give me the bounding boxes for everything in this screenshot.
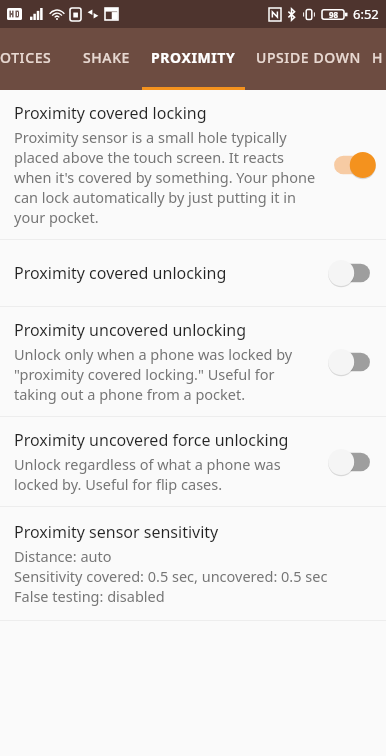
staticText: Unlock only when a phone was locked by "… bbox=[14, 344, 318, 404]
staticText: SHAKE bbox=[83, 48, 130, 67]
button[interactable]: UPSIDE DOWN bbox=[245, 28, 372, 86]
staticText: PROXIMITY bbox=[151, 48, 236, 67]
staticText: Proximity covered locking bbox=[14, 102, 207, 124]
button[interactable]: Toggle on bbox=[326, 148, 378, 182]
staticText: UPSIDE DOWN bbox=[256, 48, 361, 67]
staticText: OTICES bbox=[0, 48, 52, 67]
staticText: Proximity sensor sensitivity bbox=[14, 521, 219, 543]
staticText: Unlock regardless of what a phone was lo… bbox=[14, 454, 318, 494]
staticText: 98 bbox=[329, 9, 339, 20]
button[interactable]: Proximity covered locking bbox=[0, 90, 386, 239]
button[interactable]: SHAKE bbox=[70, 28, 142, 86]
staticText: H bbox=[372, 48, 384, 67]
button[interactable]: Proximity sensor sensitivity bbox=[0, 507, 386, 620]
button[interactable]: Toggle off bbox=[326, 256, 378, 290]
staticText: 6:52 bbox=[353, 5, 379, 23]
staticText: Proximity sensor is a small hole typical… bbox=[14, 127, 318, 227]
button[interactable]: Proximity uncovered force unlocking bbox=[0, 417, 386, 506]
button[interactable]: H bbox=[372, 28, 386, 86]
button[interactable]: Toggle off bbox=[326, 445, 378, 479]
staticText: Proximity uncovered force unlocking bbox=[14, 429, 289, 451]
button[interactable]: Proximity uncovered unlocking bbox=[0, 307, 386, 416]
staticText: Proximity uncovered unlocking bbox=[14, 319, 247, 341]
button[interactable]: OTICES bbox=[0, 28, 70, 86]
button[interactable]: PROXIMITY bbox=[142, 28, 245, 86]
button[interactable]: Toggle off bbox=[326, 345, 378, 379]
button[interactable]: Proximity covered unlocking bbox=[0, 240, 386, 306]
staticText: Distance: auto Sensitivity covered: 0.5 … bbox=[14, 546, 328, 606]
staticText: Proximity covered unlocking bbox=[14, 262, 227, 284]
